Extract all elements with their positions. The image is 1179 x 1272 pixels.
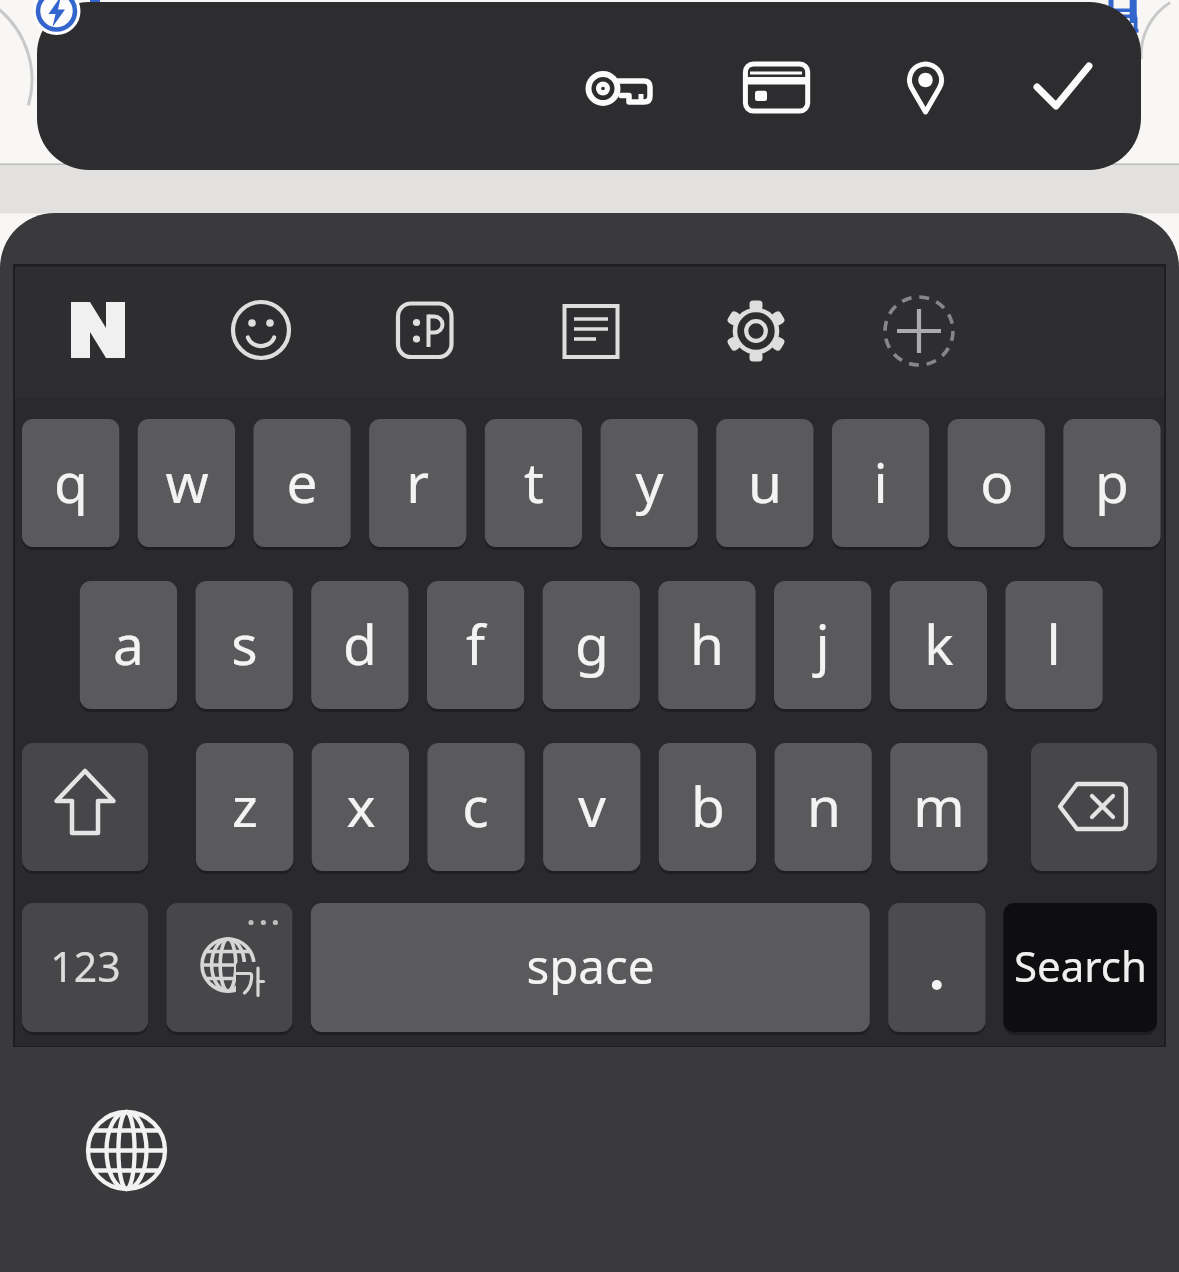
- button[interactable]: [386, 292, 462, 368]
- staticText: k: [924, 606, 954, 681]
- button[interactable]: [883, 46, 967, 130]
- button[interactable]: h: [658, 581, 755, 709]
- staticText: t: [524, 444, 544, 519]
- button[interactable]: [888, 903, 985, 1032]
- staticText: d: [343, 606, 377, 681]
- staticText: b: [691, 768, 725, 843]
- staticText: m: [913, 768, 965, 843]
- staticText: o: [980, 444, 1014, 519]
- button[interactable]: 123: [22, 903, 148, 1032]
- button[interactable]: j: [774, 581, 871, 709]
- staticText: i: [873, 444, 888, 519]
- staticText: a: [113, 606, 144, 681]
- button[interactable]: f: [427, 581, 524, 709]
- button[interactable]: u: [716, 419, 813, 547]
- button[interactable]: n: [775, 743, 872, 871]
- button[interactable]: [875, 292, 951, 368]
- button[interactable]: q: [22, 419, 119, 547]
- staticText: x: [346, 768, 376, 843]
- button[interactable]: p: [1063, 419, 1160, 547]
- button[interactable]: r: [369, 419, 466, 547]
- staticText: v: [578, 768, 606, 843]
- button[interactable]: [1021, 46, 1105, 130]
- button[interactable]: t: [485, 419, 582, 547]
- button[interactable]: space: [311, 903, 870, 1032]
- staticText: space: [526, 933, 655, 998]
- button[interactable]: [733, 46, 817, 130]
- button[interactable]: c: [427, 743, 524, 871]
- staticText: c: [462, 768, 489, 843]
- button[interactable]: y: [601, 419, 698, 547]
- button[interactable]: x: [312, 743, 409, 871]
- staticText: u: [748, 444, 782, 519]
- button[interactable]: g: [543, 581, 640, 709]
- staticText: j: [815, 606, 830, 681]
- staticText: 123: [50, 938, 121, 994]
- staticText: f: [466, 606, 485, 681]
- staticText: g: [575, 606, 609, 681]
- button[interactable]: v: [543, 743, 640, 871]
- button[interactable]: [166, 903, 292, 1032]
- staticText: Search: [1014, 937, 1147, 994]
- button[interactable]: [1031, 743, 1157, 871]
- button[interactable]: Search: [1003, 903, 1157, 1032]
- staticText: w: [165, 444, 209, 519]
- button[interactable]: [60, 292, 136, 368]
- button[interactable]: l: [1005, 581, 1102, 709]
- button[interactable]: [712, 292, 788, 368]
- button[interactable]: [22, 743, 148, 871]
- button[interactable]: s: [196, 581, 293, 709]
- button[interactable]: d: [311, 581, 408, 709]
- staticText: h: [690, 606, 724, 681]
- staticText: e: [286, 444, 318, 519]
- button[interactable]: [81, 1105, 173, 1197]
- button[interactable]: [549, 292, 625, 368]
- button[interactable]: o: [948, 419, 1045, 547]
- button[interactable]: w: [138, 419, 235, 547]
- staticText: l: [1046, 606, 1061, 681]
- button[interactable]: m: [890, 743, 987, 871]
- staticText: n: [807, 768, 841, 843]
- button[interactable]: [578, 46, 662, 130]
- button[interactable]: z: [196, 743, 293, 871]
- button[interactable]: i: [832, 419, 929, 547]
- button[interactable]: a: [80, 581, 177, 709]
- staticText: r: [406, 444, 429, 519]
- staticText: p: [1095, 444, 1129, 519]
- button[interactable]: [223, 292, 299, 368]
- staticText: y: [635, 444, 664, 519]
- button[interactable]: b: [659, 743, 756, 871]
- staticText: s: [231, 606, 258, 681]
- button[interactable]: e: [253, 419, 350, 547]
- staticText: z: [232, 768, 258, 843]
- button[interactable]: k: [890, 581, 987, 709]
- staticText: q: [54, 444, 88, 519]
